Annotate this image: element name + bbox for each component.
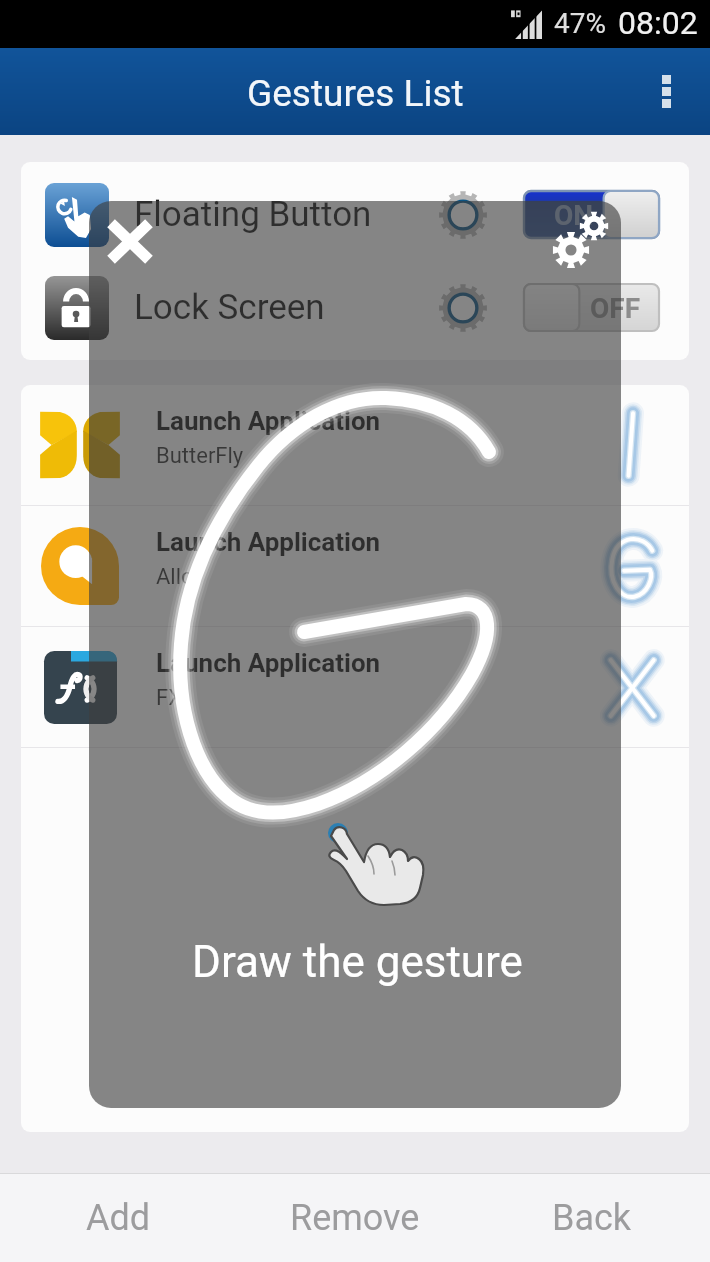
staticText: 08:02 bbox=[618, 4, 698, 42]
button[interactable]: Remove bbox=[236, 1174, 473, 1262]
button[interactable]: Add bbox=[0, 1174, 236, 1262]
staticText: Gestures List bbox=[247, 72, 464, 115]
staticText: Add bbox=[86, 1197, 151, 1239]
staticText: Remove bbox=[290, 1197, 420, 1239]
button[interactable]: Back bbox=[473, 1174, 710, 1262]
button[interactable]: Launch Application bbox=[21, 506, 689, 626]
button[interactable]: Toggle on bbox=[524, 191, 659, 238]
button[interactable]: Lock Screen bbox=[21, 261, 689, 354]
button[interactable]: Launch Application bbox=[21, 627, 689, 747]
button[interactable]: Toggle off bbox=[524, 284, 659, 331]
staticText: Launch Application bbox=[156, 406, 381, 436]
staticText: ON bbox=[554, 199, 594, 232]
staticText: 47% bbox=[554, 7, 606, 40]
staticText: ButterFly bbox=[156, 443, 244, 469]
staticText: Launch Application bbox=[156, 648, 381, 678]
staticText: Draw the gesture bbox=[192, 936, 523, 988]
staticText: Back bbox=[552, 1197, 632, 1239]
button[interactable]: Launch Application bbox=[21, 385, 689, 505]
staticText: OFF bbox=[590, 292, 641, 325]
button[interactable]: More options bbox=[622, 48, 710, 135]
staticText: FX bbox=[156, 685, 182, 711]
button[interactable]: Floating Button bbox=[21, 168, 689, 261]
staticText: Lock Screen bbox=[134, 287, 325, 328]
staticText: Floating Button bbox=[134, 194, 372, 235]
staticText: Launch Application bbox=[156, 527, 381, 557]
staticText: Allo bbox=[156, 564, 194, 590]
